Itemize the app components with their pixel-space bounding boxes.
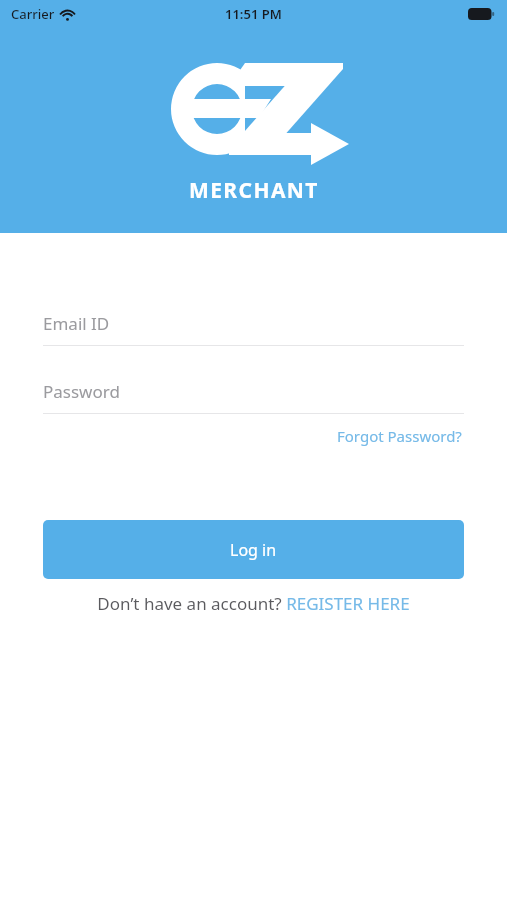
button[interactable]: Email ID [43,312,464,346]
staticText: Forgot Password? [337,426,462,446]
staticText: MERCHANT [189,176,319,205]
staticText: Password [43,380,120,403]
button[interactable]: Forgot Password? [335,422,464,450]
staticText: Log in [230,539,277,561]
staticText: 11:51 PM [225,5,282,23]
staticText: Carrier [11,5,55,23]
staticText: Don’t have an account? REGISTER HERE [97,592,410,615]
button[interactable]: Don’t have an account? REGISTER HERE [43,592,464,615]
button[interactable]: Log in [43,520,464,579]
button[interactable]: Password [43,380,464,414]
other: EZ logo [171,63,349,161]
staticText: Email ID [43,312,110,335]
